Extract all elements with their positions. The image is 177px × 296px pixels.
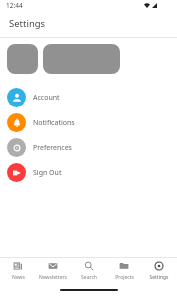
button[interactable]: Newsletters [36, 261, 70, 281]
staticText: 12:44 [6, 1, 23, 10]
staticText: Newsletters [39, 274, 67, 281]
staticText: News [12, 274, 25, 281]
staticText: Projects [115, 274, 134, 281]
button[interactable]: Notifications [0, 110, 177, 135]
staticText: Sign Out [33, 168, 62, 178]
staticText: Account [33, 93, 60, 103]
button[interactable]: Projects [107, 261, 141, 281]
button[interactable]: Account [0, 85, 177, 110]
button[interactable]: News [1, 261, 35, 281]
staticText: Settings [149, 274, 169, 281]
staticText: Settings [9, 17, 46, 30]
button[interactable]: Preferences [0, 135, 177, 160]
button[interactable]: Settings [142, 261, 176, 281]
button[interactable]: Search [72, 261, 106, 281]
staticText: Search [81, 274, 97, 281]
button[interactable] [7, 44, 38, 74]
staticText: Notifications [33, 118, 75, 128]
staticText: Preferences [33, 143, 72, 153]
button[interactable]: Sign Out [0, 160, 177, 185]
button[interactable] [43, 44, 120, 74]
